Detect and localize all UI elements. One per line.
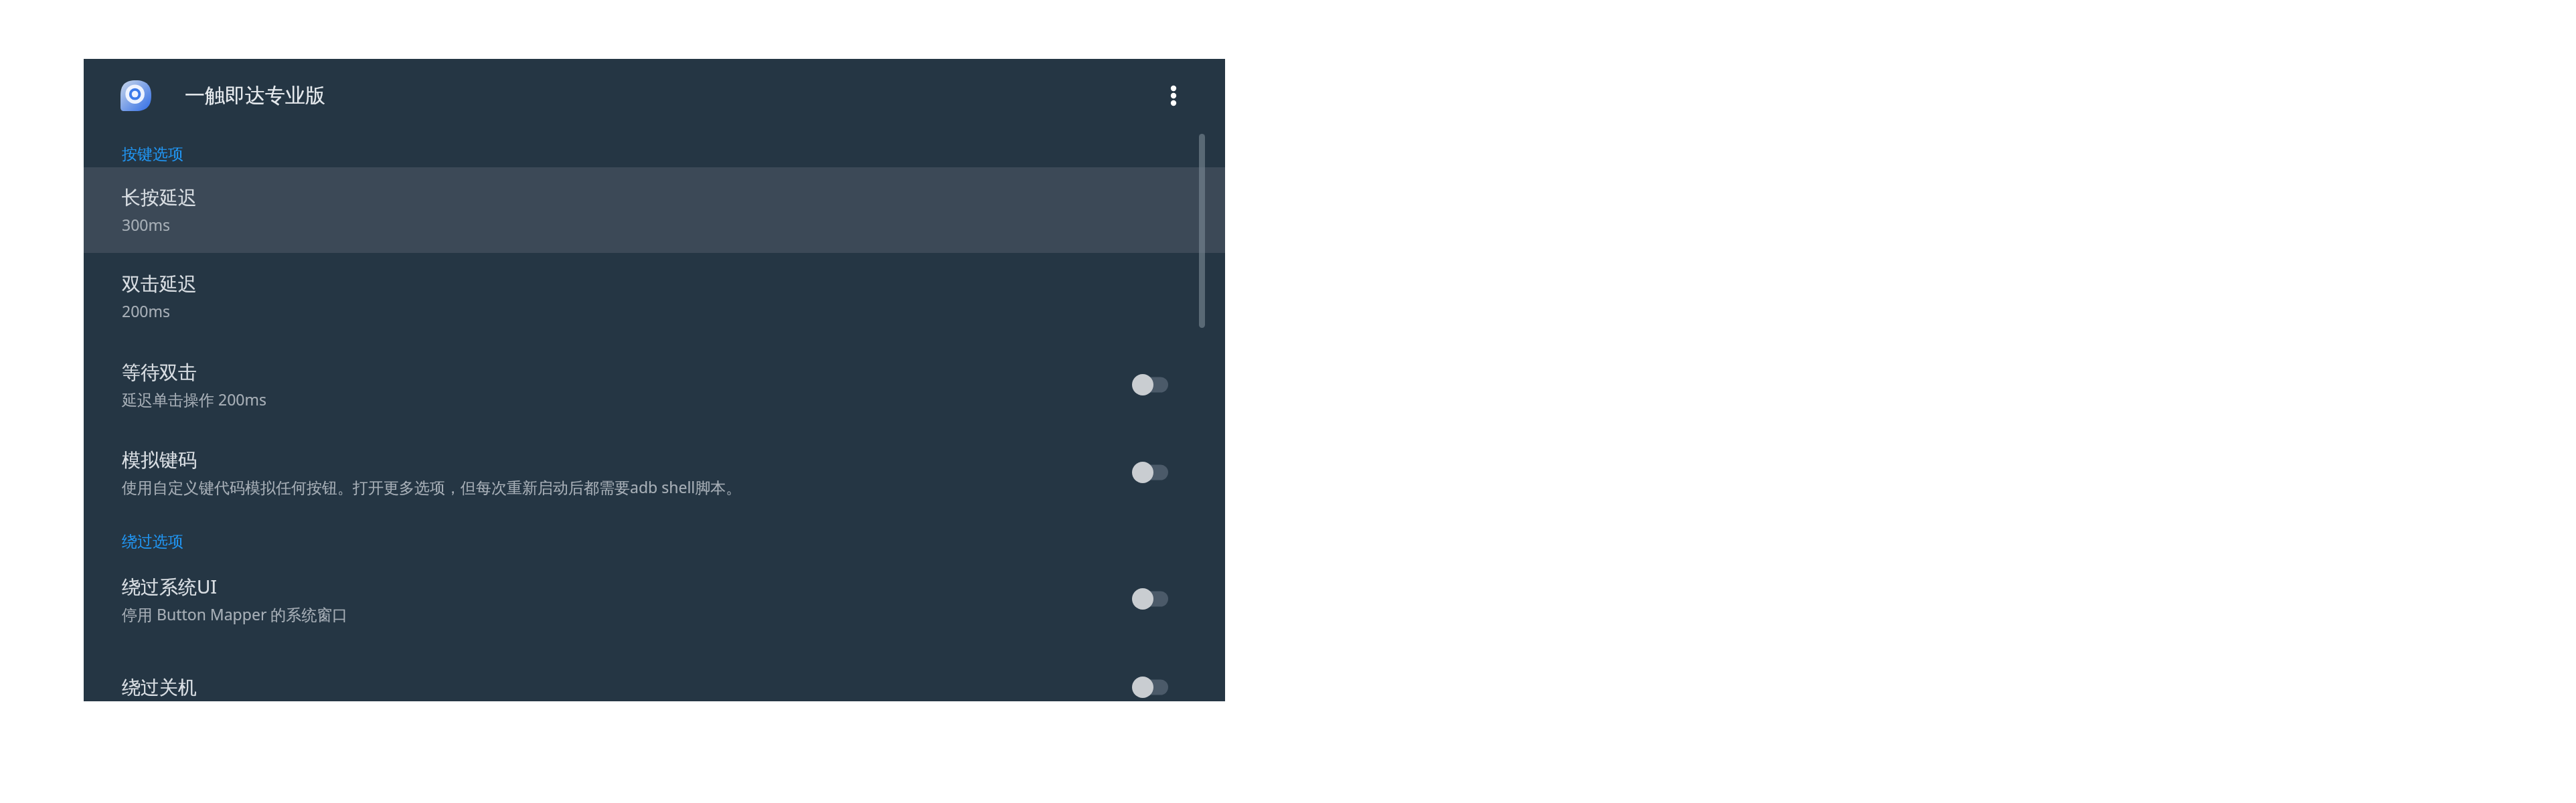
button[interactable]: More options bbox=[1154, 76, 1193, 115]
button[interactable]: 等待双击 bbox=[84, 341, 1225, 429]
staticText: 使用自定义键代码模拟任何按钮。打开更多选项，但每次重新启动后都需要adb she… bbox=[122, 476, 742, 497]
button[interactable]: Toggle bbox=[1132, 677, 1168, 698]
staticText: 一触即达专业版 bbox=[185, 83, 325, 108]
staticText: 模拟键码 bbox=[122, 448, 197, 472]
button[interactable]: 模拟键码 bbox=[84, 429, 1225, 516]
button[interactable]: 双击延迟 bbox=[84, 253, 1225, 341]
staticText: 延迟单击操作 200ms bbox=[122, 389, 266, 410]
staticText: 200ms bbox=[122, 300, 170, 321]
staticText: 绕过系统UI bbox=[122, 573, 217, 599]
staticText: 绕过关机 bbox=[122, 676, 197, 699]
staticText: 停用 Button Mapper 的系统窗口 bbox=[122, 604, 348, 624]
button[interactable]: 长按延迟 bbox=[84, 167, 1225, 253]
button[interactable]: 绕过关机 bbox=[84, 643, 1225, 701]
staticText: 双击延迟 bbox=[122, 272, 197, 296]
button[interactable]: Toggle bbox=[1132, 462, 1168, 483]
button[interactable]: Toggle bbox=[1132, 588, 1168, 610]
staticText: 按键选项 bbox=[122, 145, 183, 164]
staticText: 300ms bbox=[122, 214, 170, 235]
staticText: 绕过选项 bbox=[122, 532, 183, 551]
button[interactable]: 绕过系统UI bbox=[84, 555, 1225, 643]
staticText: 长按延迟 bbox=[122, 186, 197, 209]
button[interactable]: Toggle bbox=[1132, 374, 1168, 395]
staticText: 等待双击 bbox=[122, 361, 197, 384]
